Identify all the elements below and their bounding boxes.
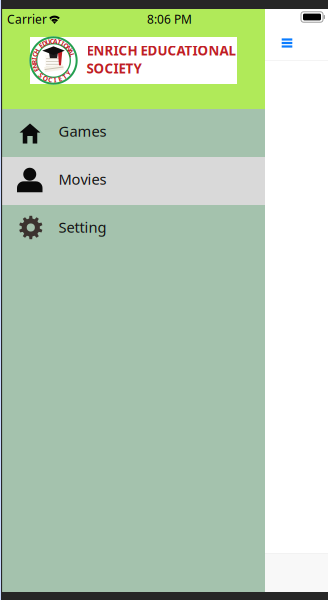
- button[interactable]: Menu: [268, 29, 306, 60]
- staticText: O: [63, 41, 68, 50]
- staticText: C: [48, 75, 52, 84]
- staticText: L: [70, 51, 74, 60]
- staticText: A: [68, 47, 73, 56]
- staticText: Carrier: [7, 11, 47, 27]
- staticText: D: [42, 39, 47, 48]
- button[interactable]: Movies: [0, 157, 265, 205]
- staticText: T: [63, 72, 67, 81]
- staticText: Y: [66, 69, 70, 77]
- staticText: U: [45, 37, 50, 46]
- staticText: S: [39, 71, 43, 80]
- staticText: ENRICH EDUCATIONAL: [86, 41, 235, 59]
- staticText: Games: [58, 121, 106, 141]
- staticText: A: [53, 37, 58, 46]
- staticText: R: [32, 58, 36, 67]
- staticText: T: [57, 37, 61, 46]
- staticText: N: [32, 62, 37, 71]
- staticText: I: [33, 54, 36, 63]
- staticText: E: [58, 74, 62, 83]
- staticText: E: [34, 65, 38, 74]
- staticText: O: [43, 74, 48, 83]
- staticText: 8:06 PM: [147, 11, 192, 27]
- staticText: E: [39, 41, 43, 50]
- staticText: C: [50, 37, 54, 46]
- staticText: I: [54, 75, 57, 84]
- staticText: H: [34, 47, 39, 56]
- staticText: I: [61, 39, 64, 48]
- staticText: N: [66, 44, 71, 53]
- button[interactable]: Setting: [0, 205, 265, 253]
- staticText: Movies: [58, 169, 106, 189]
- staticText: [38, 44, 40, 52]
- staticText: SOCIETY: [86, 59, 141, 77]
- staticText: C: [33, 50, 37, 59]
- button[interactable]: Games: [0, 109, 265, 157]
- staticText: Setting: [58, 217, 106, 237]
